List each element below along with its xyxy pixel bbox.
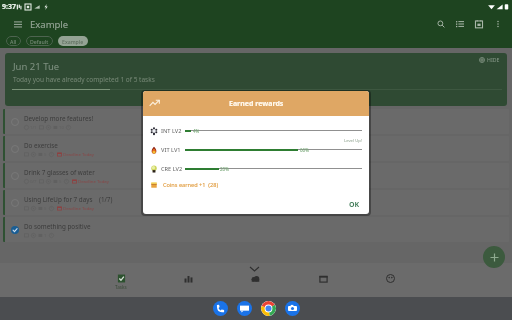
button[interactable]: Profile <box>376 274 404 283</box>
button[interactable]: Tasks <box>107 274 135 290</box>
button[interactable]: Shop <box>309 274 337 283</box>
button[interactable]: Jun 21 Tue <box>5 53 507 106</box>
staticText: Deadline Today <box>78 178 109 184</box>
button[interactable]: More options <box>488 14 507 33</box>
staticText: Do something positive <box>24 222 91 231</box>
staticText: Drink 7 glasses of water <box>24 168 95 177</box>
staticText: OK <box>349 200 360 210</box>
button[interactable]: Develop more features! <box>3 109 509 134</box>
button[interactable]: Menu <box>11 17 25 31</box>
staticText: Example <box>62 38 84 45</box>
button[interactable]: Drink 7 glasses of water <box>3 163 509 188</box>
button[interactable]: Do exercise <box>3 136 509 161</box>
staticText: Level Up! <box>344 138 362 144</box>
staticText: 9:37 <box>2 2 16 12</box>
staticText: VIT LV1 <box>161 146 185 154</box>
button[interactable]: Default <box>26 36 53 46</box>
button[interactable]: Do something positive <box>3 217 509 242</box>
staticText: All <box>10 38 17 45</box>
staticText: Do exercise <box>24 141 58 150</box>
staticText: 4% <box>193 128 200 134</box>
button[interactable]: Sort list <box>450 14 469 33</box>
staticText: 66% <box>300 147 309 153</box>
staticText: CRE LV2 <box>161 165 185 173</box>
staticText: Today you have already completed 1 of 5 … <box>13 75 155 84</box>
staticText: Using LifeUp for 7 days (1/7) <box>24 195 113 204</box>
staticText: Tasks <box>115 284 127 290</box>
staticText: Develop more features! <box>24 114 94 123</box>
button[interactable]: OK <box>345 197 364 213</box>
staticText: HIDE <box>487 56 500 63</box>
button[interactable]: Add task <box>483 246 505 268</box>
button[interactable]: Using LifeUp for 7 days (1/7) <box>3 190 509 215</box>
button[interactable]: Phone <box>213 301 228 316</box>
staticText: Deadline Today <box>63 151 94 157</box>
button[interactable]: Example <box>58 36 88 46</box>
staticText: Deadline Today <box>63 205 94 211</box>
button[interactable]: Statistics <box>174 274 202 283</box>
button[interactable]: Sync <box>241 274 269 283</box>
button[interactable]: Search <box>431 14 450 33</box>
button[interactable]: Messages <box>237 301 252 316</box>
staticText: Example <box>30 18 69 31</box>
button[interactable]: Calendar <box>469 14 488 33</box>
staticText: Default <box>30 38 49 45</box>
staticText: Jun 21 Tue <box>13 60 60 73</box>
button[interactable]: All <box>6 36 21 46</box>
staticText: Coins earned +1 (28) <box>163 181 219 189</box>
staticText: 20% <box>220 166 229 172</box>
staticText: Earned rewards <box>229 99 284 109</box>
staticText: INT LV2 <box>161 127 185 135</box>
button[interactable]: Camera <box>285 301 300 316</box>
button[interactable]: Chrome <box>261 301 276 316</box>
